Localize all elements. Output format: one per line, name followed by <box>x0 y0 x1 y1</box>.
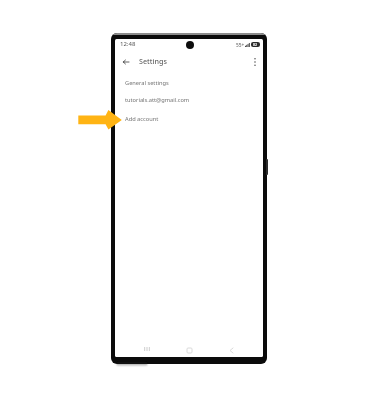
staticText: tutorials.att@gmail.com <box>125 96 190 104</box>
button[interactable]: Back <box>225 344 237 356</box>
staticText: 55+ <box>236 42 245 49</box>
button[interactable]: Back <box>120 56 132 68</box>
button[interactable]: More options <box>249 56 261 68</box>
button[interactable]: Recent apps <box>141 343 153 355</box>
button[interactable]: tutorials.att@gmail.com <box>115 91 263 108</box>
button[interactable]: Home <box>183 344 195 356</box>
staticText: Settings <box>139 56 167 66</box>
staticText: General settings <box>125 79 169 87</box>
staticText: 12:48 <box>120 40 136 48</box>
button[interactable]: General settings <box>115 74 263 91</box>
staticText: 82 <box>253 42 258 47</box>
staticText: Add account <box>125 115 159 123</box>
button[interactable]: Add account <box>115 110 263 127</box>
